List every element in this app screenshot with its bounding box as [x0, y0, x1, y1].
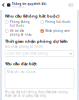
button[interactable]: Phòng không hút thuốc: [5, 20, 38, 27]
button[interactable]: Nhận phòng sớm: [40, 29, 74, 33]
staticText: Hỗ trợ đặt phòng kề nhau: [10, 29, 32, 36]
staticText: Yêu cầu đặc biệt: [5, 61, 37, 66]
staticText: Chọn thời gian nhận phòng: [7, 52, 48, 55]
button[interactable]: Chọn thời gian nhận phòng: [5, 51, 74, 57]
staticText: Nhận phòng sớm: [45, 29, 69, 33]
staticText: Thời gian nhận phòng dự kiến: [5, 38, 68, 44]
button[interactable]: Phòng hút thuốc: [40, 20, 74, 24]
staticText: Giờ nhận phòng từ 14:00: [5, 45, 43, 48]
staticText: Nhu cầu (không bắt buộc): [5, 13, 59, 19]
staticText: Nhập yêu cầu của bạn: [7, 70, 36, 74]
staticText: Phòng hút thuốc: [45, 20, 70, 24]
staticText: Phòng không hút thuốc: [10, 20, 30, 27]
button[interactable]: Back: [0, 0, 7, 10]
button[interactable]: Hỗ trợ đặt phòng kề nhau: [5, 29, 38, 36]
button[interactable]: Nhập yêu cầu của bạn: [5, 68, 74, 88]
staticText: Phan Anh · minigame: [11, 6, 24, 8]
staticText: Yêu cầu đặc biệt không được đảm bảo nhưn…: [5, 90, 68, 98]
button[interactable]: More: [68, 3, 74, 7]
staticText: Thông tin quy trình đổi: [11, 2, 46, 6]
